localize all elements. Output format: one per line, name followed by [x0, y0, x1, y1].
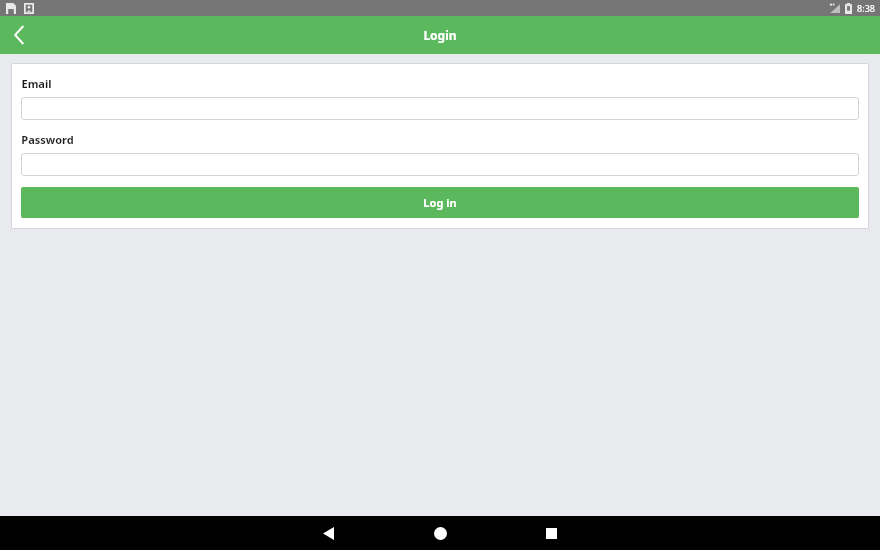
- button[interactable]: Password field: [21, 153, 859, 176]
- staticText: Email: [21, 76, 52, 91]
- staticText: 8:38: [857, 2, 875, 14]
- button[interactable]: Log in: [21, 187, 859, 218]
- button[interactable]: Home: [420, 516, 460, 550]
- button[interactable]: Email field: [21, 97, 859, 120]
- button[interactable]: Recent apps: [531, 516, 571, 550]
- button[interactable]: Back: [308, 516, 348, 550]
- button[interactable]: Back: [0, 16, 38, 54]
- staticText: Login: [423, 27, 457, 43]
- staticText: Password: [21, 132, 74, 147]
- staticText: Log in: [423, 195, 457, 210]
